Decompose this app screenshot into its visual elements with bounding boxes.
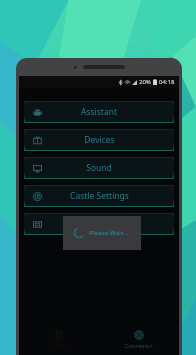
staticText: Sound xyxy=(86,162,112,174)
other: Privacy xyxy=(33,220,42,229)
button[interactable]: Castle Settings xyxy=(25,186,173,206)
other: Castle Settings xyxy=(33,192,42,201)
button[interactable]: Connexion xyxy=(99,323,179,355)
staticText: Assistant xyxy=(81,106,117,118)
button[interactable]: Devices xyxy=(25,130,173,150)
staticText: Please Wait ... xyxy=(89,229,131,237)
button[interactable]: Assistant xyxy=(25,102,173,122)
button[interactable]: Privacy xyxy=(25,214,173,234)
staticText: 04:18 xyxy=(159,78,175,86)
staticText: 20% xyxy=(139,78,151,86)
staticText: Devices xyxy=(84,134,115,146)
other: Devices xyxy=(33,136,42,145)
other: Sound xyxy=(33,164,42,173)
other: Assistant xyxy=(33,108,42,117)
button[interactable]: Sound xyxy=(25,158,173,178)
staticText: Castle Settings xyxy=(70,190,129,202)
staticText: Connexion xyxy=(125,342,153,349)
